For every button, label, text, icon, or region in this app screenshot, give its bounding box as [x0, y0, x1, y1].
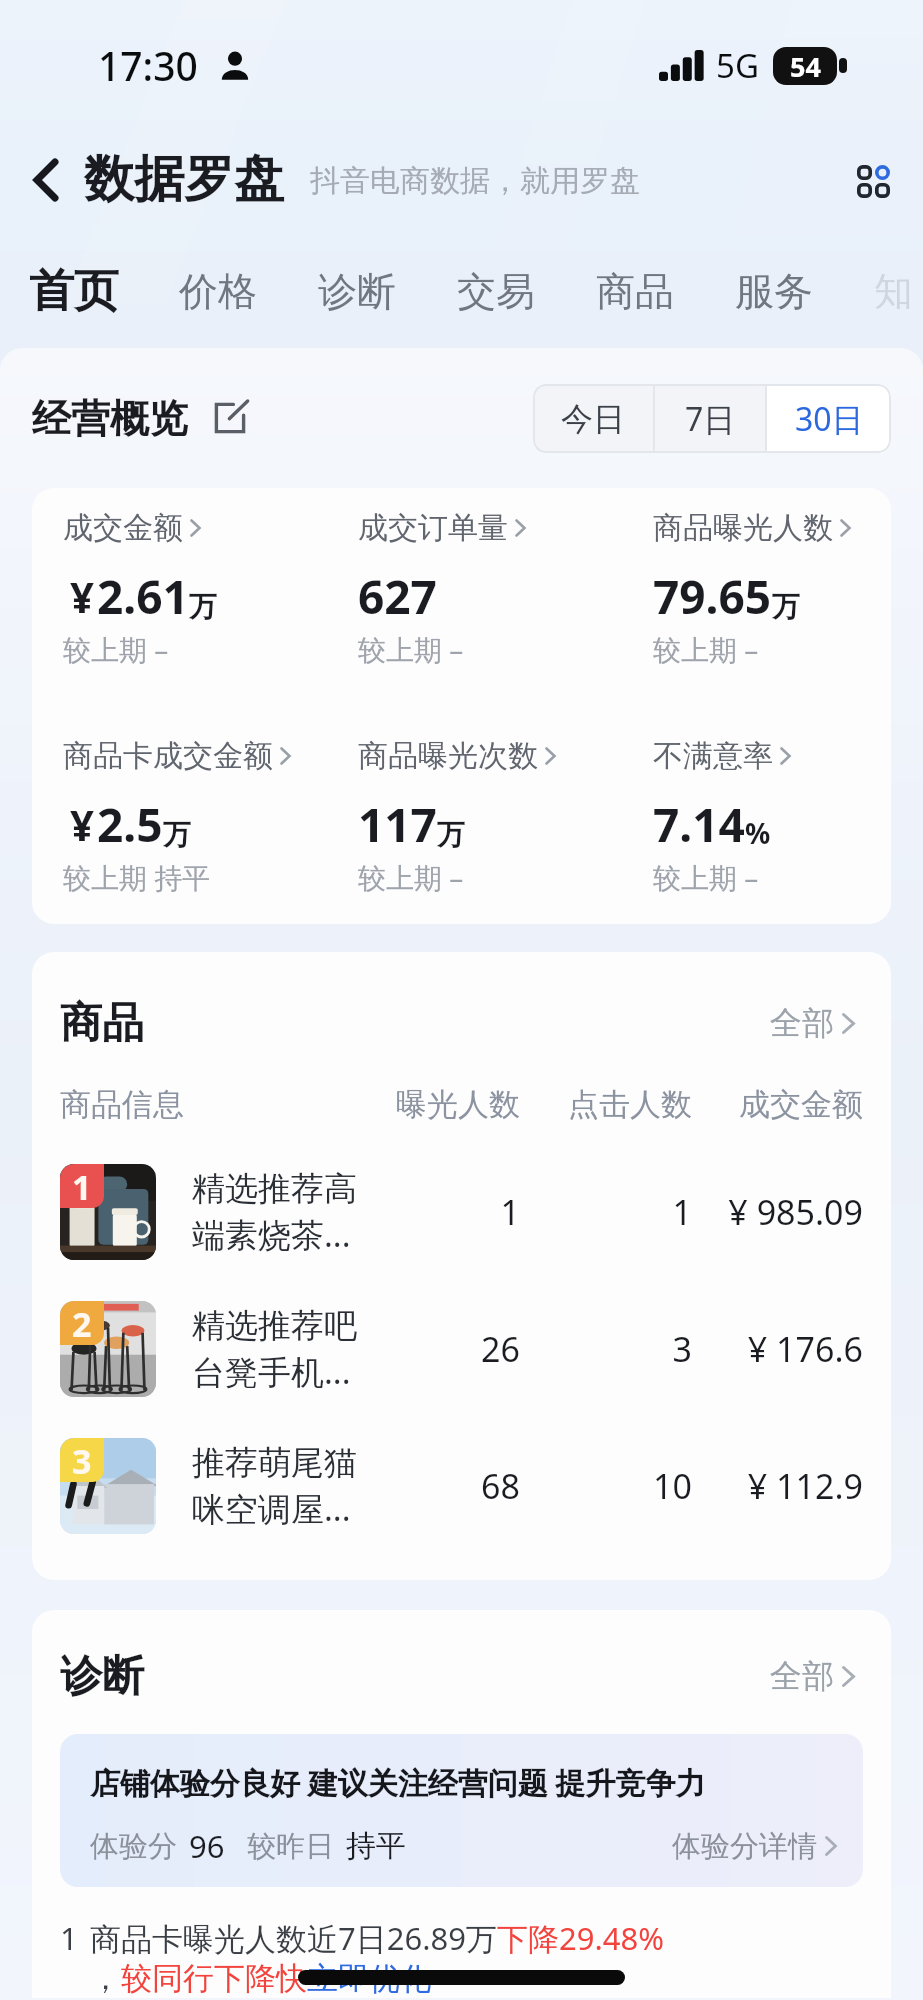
staticText: ， [90, 1959, 121, 1998]
staticText: 5G [716, 43, 759, 88]
staticText: ¥ 112.9 [692, 1463, 863, 1509]
staticText: 商品信息 [60, 1085, 392, 1124]
button[interactable]: 服务 [735, 234, 874, 348]
button[interactable]: 不满意率 [653, 737, 860, 896]
staticText: 数据罗盘 [84, 148, 284, 211]
staticText: 68 [392, 1463, 520, 1509]
staticText: 79.65 [653, 565, 772, 628]
staticText: 较上期 – [358, 630, 464, 668]
button[interactable]: 成交金额 [63, 509, 358, 668]
staticText: 较上期 – [63, 630, 169, 668]
staticText: 万 [437, 817, 465, 852]
staticText: 较上期 持平 [63, 858, 211, 896]
staticText: 1 [72, 1164, 92, 1208]
staticText: 17:30 [98, 39, 198, 92]
staticText: 1 [60, 1917, 78, 1959]
staticText: 117 [358, 793, 437, 856]
button[interactable]: 首页 [29, 234, 179, 348]
staticText: 较上期 – [358, 858, 464, 896]
button[interactable]: 3 [60, 1417, 863, 1554]
staticText: 30日 [795, 397, 864, 441]
staticText: 曝光人数 [392, 1085, 520, 1124]
staticText: 体验分详情 [672, 1828, 817, 1865]
button[interactable]: Apps [841, 149, 905, 213]
staticText: 店铺体验分良好 建议关注经营问题 提升竞争力 [90, 1762, 706, 1803]
staticText: 经营概览 [32, 394, 188, 443]
staticText: 商品 [596, 267, 674, 316]
staticText: 精选推荐吧 台凳手机... [192, 1305, 357, 1394]
staticText: 下降29.48% [497, 1917, 664, 1959]
staticText: 较昨日 [247, 1828, 334, 1865]
staticText: 7.14 [653, 793, 745, 856]
staticText: 交易 [457, 267, 535, 316]
button[interactable]: 诊断 [318, 234, 457, 348]
staticText: ¥ 985.09 [692, 1189, 863, 1235]
staticText: 3 [72, 1438, 92, 1482]
staticText: 较上期 – [653, 858, 759, 896]
button[interactable]: 30日 [767, 384, 891, 453]
staticText: ¥ [70, 796, 95, 853]
button[interactable]: Edit [212, 400, 248, 436]
staticText: % [745, 814, 771, 852]
staticText: 2 [72, 1301, 92, 1345]
staticText: 价格 [179, 267, 257, 316]
staticText: 商品曝光次数 [358, 737, 538, 775]
staticText: 万 [163, 817, 191, 852]
staticText: 96 [189, 1825, 225, 1867]
staticText: ¥ [70, 568, 95, 625]
staticText: 推荐萌尾猫 咪空调屋... [192, 1442, 357, 1531]
staticText: 万 [189, 589, 217, 624]
button[interactable]: 商品 [596, 234, 735, 348]
button[interactable]: 成交订单量 [358, 509, 653, 668]
staticText: 较上期 – [653, 630, 759, 668]
button[interactable]: 1 [60, 1143, 863, 1280]
staticText: 1 [520, 1189, 692, 1235]
button[interactable]: 商品曝光次数 [358, 737, 653, 896]
button[interactable]: 全部 [762, 995, 863, 1051]
staticText: 成交订单量 [358, 509, 508, 547]
staticText: 2.61 [97, 565, 189, 628]
staticText: 万 [772, 589, 800, 624]
staticText: 抖音电商数据，就用罗盘 [310, 162, 640, 200]
staticText: 7日 [685, 397, 736, 441]
staticText: 26 [392, 1326, 520, 1372]
staticText: 诊断 [318, 267, 396, 316]
staticText: 点击人数 [520, 1085, 692, 1124]
staticText: 较同行下降快 [121, 1959, 307, 1998]
button[interactable]: Back [14, 148, 78, 212]
staticText: 商品卡成交金额 [63, 737, 273, 775]
button[interactable]: 2 [60, 1280, 863, 1417]
staticText: 商品 [60, 997, 144, 1050]
button[interactable]: 商品曝光人数 [653, 509, 860, 668]
staticText: 全部 [770, 1003, 834, 1043]
staticText: 精选推荐高 端素烧茶... [192, 1168, 357, 1257]
staticText: 持平 [346, 1827, 406, 1865]
staticText: 服务 [735, 267, 813, 316]
staticText: ¥ 176.6 [692, 1326, 863, 1372]
staticText: 3 [520, 1326, 692, 1372]
button[interactable]: 商品卡成交金额 [63, 737, 358, 896]
staticText: 体验分 [90, 1828, 177, 1865]
staticText: 今日 [561, 399, 625, 439]
staticText: 10 [520, 1463, 692, 1509]
staticText: 全部 [770, 1656, 834, 1696]
staticText: 1 [392, 1189, 520, 1235]
button[interactable]: 店铺体验分良好 建议关注经营问题 提升竞争力 [60, 1734, 863, 1887]
staticText: 成交金额 [63, 509, 183, 547]
staticText: 成交金额 [692, 1085, 863, 1124]
staticText: 诊断 [60, 1650, 144, 1703]
button[interactable]: 全部 [762, 1648, 863, 1704]
staticText: 商品卡曝光人数近7日26.89万 [90, 1917, 497, 1959]
button[interactable]: 7日 [655, 384, 765, 453]
staticText: 不满意率 [653, 737, 773, 775]
staticText: 知 [874, 267, 913, 316]
staticText: 54 [790, 48, 821, 85]
staticText: 627 [358, 565, 437, 628]
staticText: 2.5 [97, 793, 163, 856]
staticText: 立即优化 [307, 1959, 431, 1998]
staticText: 首页 [29, 263, 119, 320]
button[interactable]: 交易 [457, 234, 596, 348]
button[interactable]: 价格 [179, 234, 318, 348]
staticText: 商品曝光人数 [653, 509, 833, 547]
button[interactable]: 今日 [533, 384, 653, 453]
